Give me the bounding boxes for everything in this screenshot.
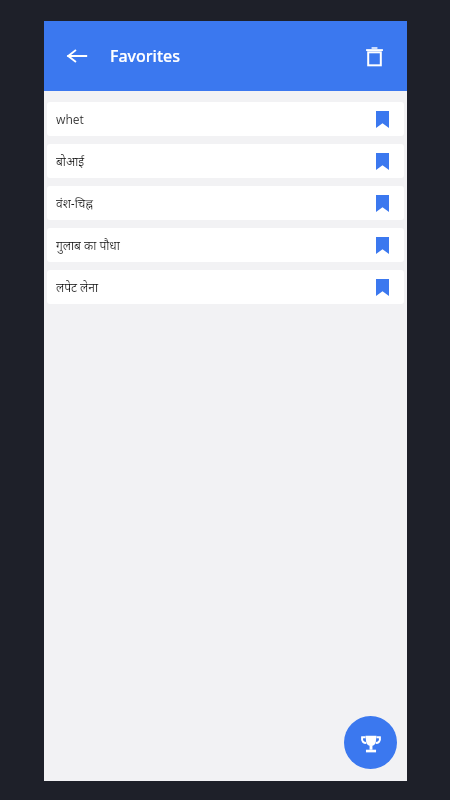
button[interactable]: Bookmark [371, 106, 393, 132]
button[interactable]: Bookmark [371, 274, 393, 300]
staticText: गुलाब का पौधा [56, 237, 371, 253]
staticText: whet [56, 111, 371, 127]
button[interactable]: Bookmark [371, 190, 393, 216]
staticText: वंश-चिह्न [56, 195, 371, 211]
button[interactable]: Achievements [344, 716, 397, 769]
button[interactable]: लपेट लेना [47, 270, 404, 304]
button[interactable]: गुलाब का पौधा [47, 228, 404, 262]
button[interactable]: Bookmark [371, 148, 393, 174]
staticText: Favorites [110, 45, 180, 67]
staticText: बोआई [56, 153, 371, 169]
button[interactable]: Back [54, 33, 100, 79]
button[interactable]: वंश-चिह्न [47, 186, 404, 220]
button[interactable]: Bookmark [371, 232, 393, 258]
button[interactable]: Delete all [351, 33, 397, 79]
button[interactable]: बोआई [47, 144, 404, 178]
staticText: लपेट लेना [56, 279, 371, 295]
button[interactable]: whet [47, 102, 404, 136]
